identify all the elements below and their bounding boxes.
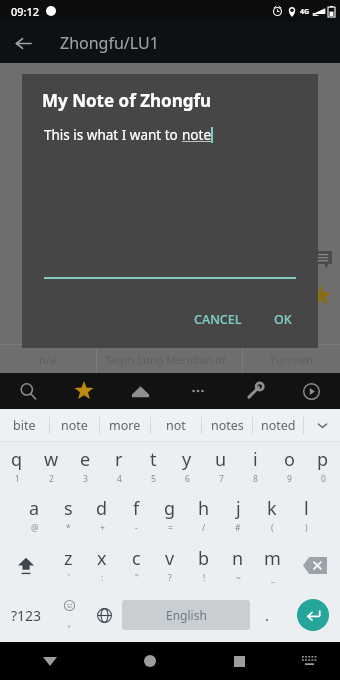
- staticText: notes: [211, 417, 244, 434]
- button[interactable]: .: [250, 590, 285, 640]
- staticText: ": [135, 572, 139, 584]
- button[interactable]: Home: [112, 373, 169, 409]
- button[interactable]: More: [169, 373, 226, 409]
- button[interactable]: i: [238, 442, 272, 490]
- staticText: #: [235, 522, 241, 534]
- staticText: v: [165, 546, 175, 571]
- button[interactable]: Switch keyboard: [279, 642, 340, 680]
- button[interactable]: w: [34, 442, 68, 490]
- staticText: b: [198, 546, 210, 571]
- staticText: Zhongfu/LU1: [60, 32, 159, 54]
- button[interactable]: Play: [283, 373, 340, 409]
- staticText: i: [253, 447, 258, 472]
- button[interactable]: CANCEL: [184, 305, 252, 334]
- button[interactable]: Back: [6, 26, 40, 60]
- staticText: note: [61, 417, 88, 434]
- button[interactable]: p: [306, 442, 340, 490]
- button[interactable]: c: [119, 540, 153, 590]
- staticText: -: [135, 522, 138, 534]
- staticText: c: [132, 546, 141, 571]
- button[interactable]: k: [255, 490, 289, 540]
- staticText: !: [203, 572, 206, 584]
- button[interactable]: Tools: [226, 373, 283, 409]
- button[interactable]: Home: [100, 642, 200, 680]
- button[interactable]: m: [255, 540, 289, 590]
- button[interactable]: s: [51, 490, 85, 540]
- button[interactable]: not: [151, 409, 201, 441]
- button[interactable]: a: [17, 490, 51, 540]
- staticText: bite: [13, 417, 36, 434]
- button[interactable]: e: [68, 442, 102, 490]
- staticText: w: [44, 447, 59, 472]
- staticText: u: [215, 447, 227, 472]
- button[interactable]: Recents: [200, 642, 279, 680]
- button[interactable]: Back: [0, 642, 100, 680]
- staticText: o: [284, 447, 295, 472]
- staticText: +: [100, 522, 105, 534]
- button[interactable]: OK: [264, 305, 302, 334]
- staticText: h: [198, 496, 210, 521]
- button[interactable]: Emoji: [52, 590, 87, 640]
- staticText: CANCEL: [194, 311, 242, 328]
- button[interactable]: Backspace: [289, 540, 340, 590]
- staticText: ?: [168, 572, 172, 584]
- button[interactable]: t: [136, 442, 170, 490]
- staticText: ': [68, 572, 70, 584]
- staticText: /: [202, 522, 206, 534]
- staticText: a: [29, 496, 40, 521]
- button[interactable]: n: [221, 540, 255, 590]
- staticText: 3: [83, 473, 88, 485]
- button[interactable]: y: [170, 442, 204, 490]
- button[interactable]: notes: [202, 409, 252, 441]
- staticText: 0: [321, 473, 326, 485]
- button[interactable]: Search: [0, 373, 56, 409]
- button[interactable]: English: [122, 600, 250, 630]
- staticText: e: [80, 447, 91, 472]
- button[interactable]: More suggestions: [304, 409, 340, 441]
- staticText: Yunmen: [270, 352, 313, 367]
- staticText: 09:12: [11, 4, 40, 19]
- staticText: :: [101, 572, 104, 584]
- button[interactable]: x: [85, 540, 119, 590]
- button[interactable]: l: [289, 490, 323, 540]
- button[interactable]: r: [102, 442, 136, 490]
- staticText: 8: [253, 473, 258, 485]
- button[interactable]: Enter: [285, 590, 340, 640]
- button[interactable]: q: [0, 442, 34, 490]
- staticText: not: [166, 417, 186, 434]
- staticText: j: [236, 496, 241, 521]
- button[interactable]: z: [51, 540, 85, 590]
- button[interactable]: ?123: [0, 590, 52, 640]
- button[interactable]: o: [272, 442, 306, 490]
- button[interactable]: Change language: [87, 590, 122, 640]
- staticText: *: [66, 522, 71, 534]
- button[interactable]: more: [100, 409, 150, 441]
- staticText: English: [166, 607, 207, 623]
- button[interactable]: v: [153, 540, 187, 590]
- staticText: 6: [185, 473, 190, 485]
- staticText: _: [271, 572, 275, 584]
- staticText: y: [182, 447, 192, 472]
- staticText: note: [182, 126, 211, 144]
- staticText: n/a: [39, 352, 57, 367]
- staticText: r: [115, 447, 123, 472]
- staticText: .: [265, 605, 270, 625]
- staticText: 4: [117, 473, 122, 485]
- button[interactable]: u: [204, 442, 238, 490]
- button[interactable]: noted: [253, 409, 303, 441]
- button[interactable]: f: [119, 490, 153, 540]
- staticText: Taiyin Lung Meridian of...: [105, 352, 235, 367]
- button[interactable]: j: [221, 490, 255, 540]
- staticText: z: [64, 546, 73, 571]
- button[interactable]: d: [85, 490, 119, 540]
- button[interactable]: note: [50, 409, 99, 441]
- button[interactable]: Shift: [0, 540, 51, 590]
- staticText: s: [64, 496, 73, 521]
- button[interactable]: b: [187, 540, 221, 590]
- button[interactable]: h: [187, 490, 221, 540]
- button[interactable]: Favorites: [56, 373, 112, 409]
- button[interactable]: g: [153, 490, 187, 540]
- staticText: My Note of Zhongfu: [42, 89, 212, 112]
- staticText: @: [31, 522, 39, 534]
- button[interactable]: bite: [0, 409, 49, 441]
